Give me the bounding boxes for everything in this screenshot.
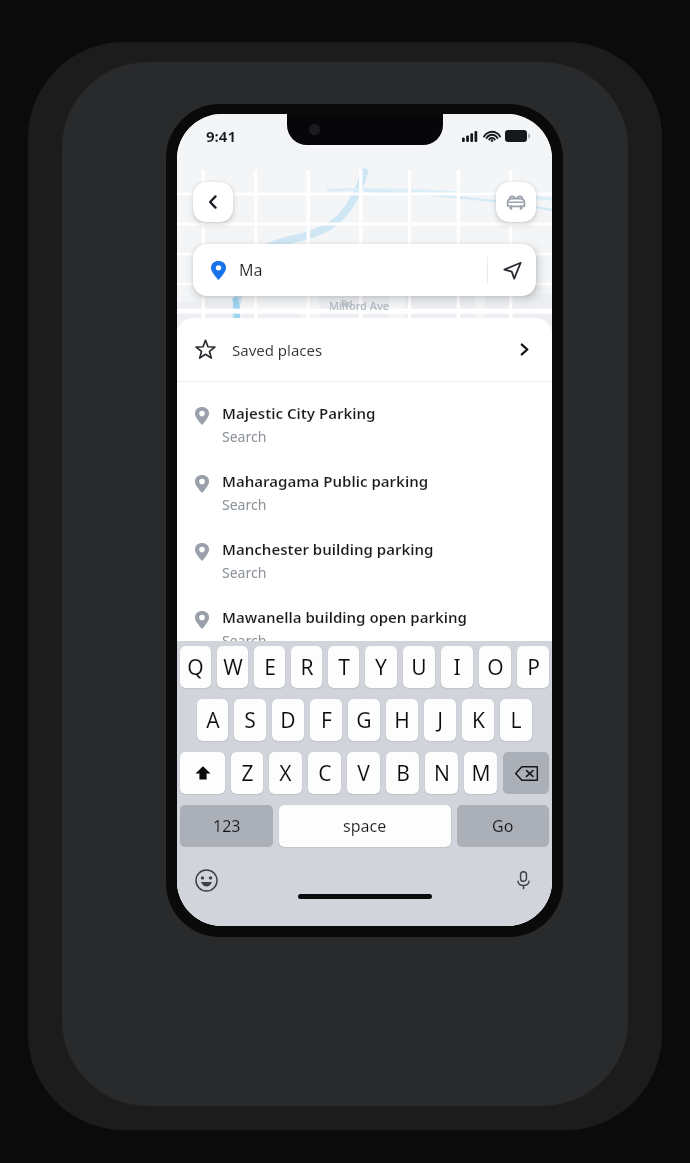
button[interactable]: V — [347, 752, 380, 794]
button[interactable]: Mawanella building open parking — [177, 599, 552, 667]
button[interactable]: Go — [457, 805, 549, 847]
staticText: 123 — [213, 815, 241, 837]
staticText: G — [356, 706, 372, 735]
button[interactable]: Driving mode — [496, 182, 536, 222]
button[interactable]: P — [517, 646, 549, 688]
staticText: V — [357, 759, 370, 788]
button[interactable]: Backspace — [503, 752, 549, 794]
staticText: C — [318, 759, 332, 788]
button[interactable]: Ma — [193, 244, 536, 296]
staticText: Q — [187, 653, 204, 682]
button[interactable]: F — [310, 699, 342, 741]
button[interactable]: H — [386, 699, 418, 741]
button[interactable]: B — [386, 752, 419, 794]
staticText: space — [343, 815, 387, 837]
staticText: 9:41 — [206, 126, 236, 146]
staticText: J — [437, 706, 443, 735]
button[interactable]: Y — [365, 646, 397, 688]
staticText: P — [527, 653, 540, 682]
staticText: L — [510, 706, 522, 735]
staticText: Search — [222, 495, 267, 514]
button[interactable]: W — [217, 646, 248, 688]
button[interactable]: S — [234, 699, 266, 741]
button[interactable]: C — [308, 752, 341, 794]
button[interactable]: Q — [180, 646, 211, 688]
staticText: Search — [222, 631, 267, 650]
staticText: Saved places — [232, 340, 323, 360]
button[interactable]: O — [479, 646, 511, 688]
staticText: U — [411, 653, 427, 682]
button[interactable]: T — [328, 646, 359, 688]
button[interactable]: Voice input — [508, 865, 538, 895]
staticText: Search — [222, 427, 267, 446]
staticText: W — [223, 653, 243, 682]
button[interactable]: Z — [231, 752, 263, 794]
staticText: B — [396, 759, 410, 788]
button[interactable]: 123 — [180, 805, 273, 847]
staticText: D — [280, 706, 296, 735]
staticText: Maharagama Public parking — [222, 471, 429, 491]
staticText: Majestic City Parking — [222, 403, 376, 423]
staticText: Z — [241, 759, 254, 788]
staticText: Mawanella building open parking — [222, 607, 467, 627]
staticText: N — [434, 759, 450, 788]
button[interactable]: Saved places — [177, 318, 552, 381]
button[interactable]: Back — [193, 182, 233, 222]
staticText: I — [453, 653, 461, 682]
staticText: X — [279, 759, 292, 788]
button[interactable]: M — [464, 752, 497, 794]
button[interactable]: E — [254, 646, 285, 688]
button[interactable]: J — [424, 699, 456, 741]
button[interactable]: K — [462, 699, 494, 741]
staticText: Search — [222, 563, 267, 582]
staticText: O — [487, 653, 504, 682]
staticText: K — [472, 706, 485, 735]
staticText: Y — [375, 653, 387, 682]
staticText: Go — [492, 815, 514, 837]
button[interactable]: Navigate — [488, 244, 536, 296]
button[interactable]: N — [425, 752, 458, 794]
staticText: Milford Ave — [329, 298, 390, 313]
button[interactable]: Majestic City Parking — [177, 395, 552, 463]
staticText: T — [338, 653, 350, 682]
button[interactable]: R — [291, 646, 322, 688]
button[interactable]: space — [279, 805, 451, 847]
button[interactable]: U — [403, 646, 435, 688]
staticText: E — [264, 653, 276, 682]
button[interactable]: G — [348, 699, 380, 741]
staticText: A — [206, 706, 220, 735]
staticText: F — [321, 706, 332, 735]
button[interactable]: Manchester building parking — [177, 531, 552, 599]
staticText: Manchester building parking — [222, 539, 434, 559]
staticText: R — [300, 653, 314, 682]
staticText: Ma — [239, 259, 263, 281]
staticText: S — [244, 706, 256, 735]
staticText: Rd — [341, 297, 353, 309]
button[interactable]: L — [500, 699, 532, 741]
button[interactable]: Shift — [180, 752, 225, 794]
button[interactable]: Emoji — [191, 865, 221, 895]
button[interactable]: D — [272, 699, 304, 741]
button[interactable]: X — [269, 752, 302, 794]
button[interactable]: I — [441, 646, 473, 688]
button[interactable]: Maharagama Public parking — [177, 463, 552, 531]
staticText: M — [471, 759, 491, 788]
button[interactable]: A — [197, 699, 228, 741]
staticText: H — [394, 706, 410, 735]
